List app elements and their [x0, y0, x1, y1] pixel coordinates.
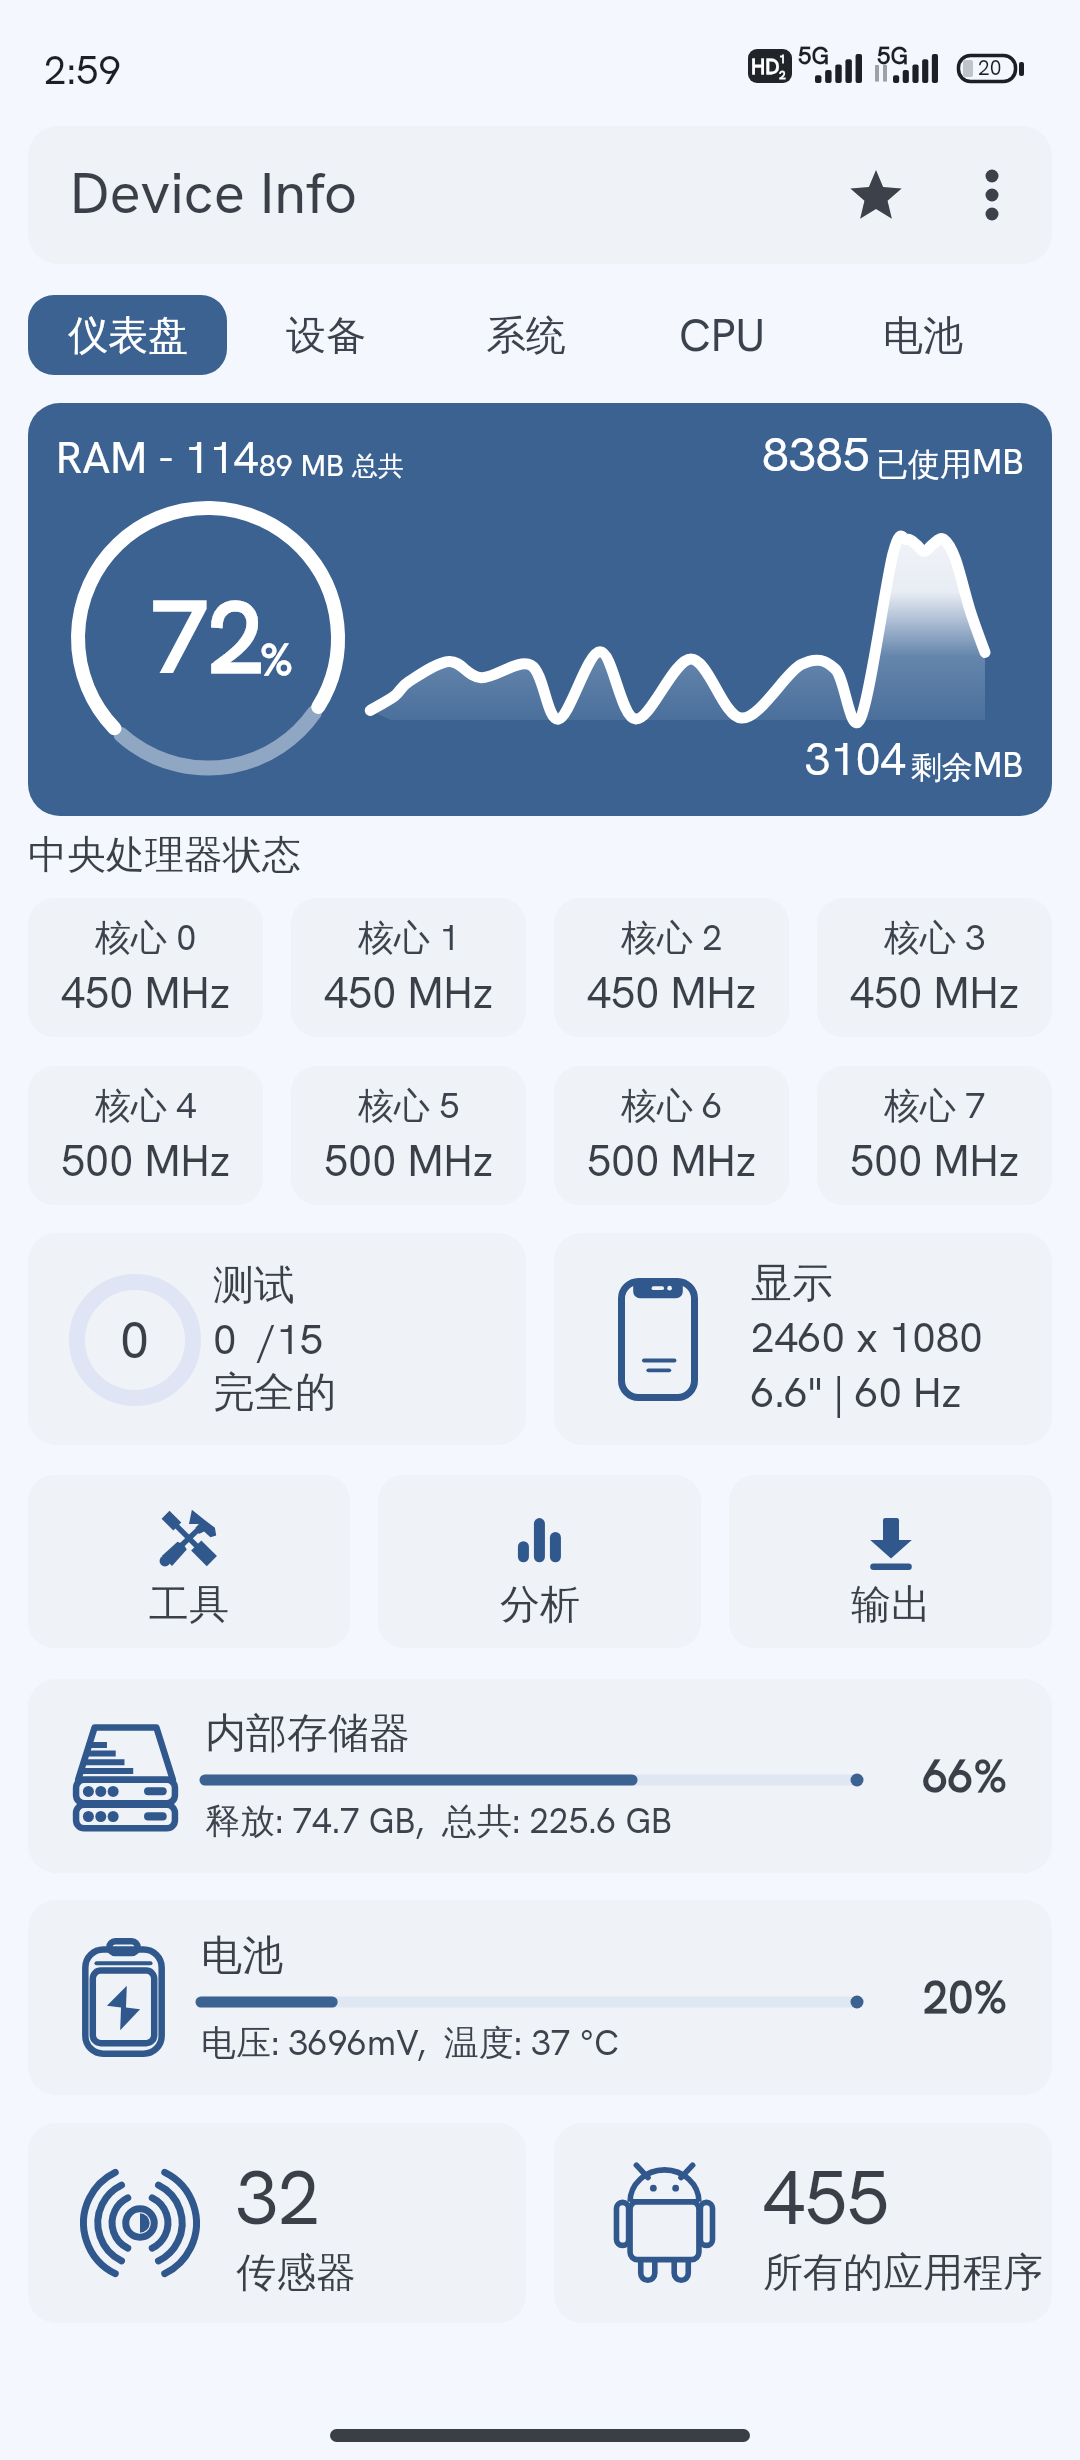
staticText: 中央处理器状态	[28, 830, 301, 879]
staticText: 20%	[923, 1968, 1008, 2027]
button[interactable]: 32	[28, 2123, 526, 2323]
staticText: 分析	[500, 1579, 580, 1629]
staticText: 核心 7	[884, 1082, 986, 1129]
button[interactable]: Favorite	[828, 147, 924, 243]
button[interactable]: 工具	[28, 1475, 350, 1648]
staticText: 电池	[201, 1930, 283, 1982]
staticText: CPU	[679, 306, 766, 365]
staticText: 500 MHz	[324, 1133, 493, 1189]
button[interactable]: 核心 4	[28, 1066, 263, 1205]
button[interactable]: 核心 2	[554, 898, 789, 1037]
staticText: 6.6" | 60 Hz	[751, 1365, 962, 1420]
button[interactable]: 电池	[28, 1900, 1052, 2095]
staticText: 内部存储器	[205, 1708, 410, 1760]
staticText: 500 MHz	[850, 1133, 1019, 1189]
staticText: 5G	[798, 40, 829, 71]
staticText: 工具	[149, 1579, 229, 1629]
staticText: 0 /15	[213, 1312, 323, 1367]
staticText: 核心 6	[621, 1082, 723, 1129]
staticText: 核心 4	[95, 1082, 197, 1129]
staticText: 核心 5	[358, 1082, 460, 1129]
button[interactable]: 核心 0	[28, 898, 263, 1037]
staticText: 电压: 3696mV, 温度: 37 °C	[201, 2020, 619, 2066]
button[interactable]: 455	[554, 2123, 1052, 2323]
staticText: 1	[779, 51, 786, 67]
staticText: 89	[259, 446, 293, 485]
button[interactable]: 核心 5	[291, 1066, 526, 1205]
staticText: 电池	[883, 310, 963, 360]
staticText: 2:59	[44, 44, 121, 96]
staticText: 核心 3	[884, 914, 986, 961]
staticText: 输出	[851, 1579, 931, 1629]
button[interactable]: 仪表盘	[28, 295, 227, 375]
button[interactable]: 系统	[453, 295, 598, 375]
staticText: 已使用	[876, 444, 972, 484]
staticText: 剩余	[911, 748, 973, 787]
button[interactable]: 0	[28, 1233, 526, 1445]
staticText: 500 MHz	[61, 1133, 230, 1189]
staticText: 5G	[877, 40, 908, 71]
staticText: 0	[120, 1306, 150, 1374]
staticText: 测试	[213, 1260, 295, 1312]
button[interactable]: 显示	[554, 1233, 1052, 1445]
button[interactable]: 核心 7	[817, 1066, 1052, 1205]
staticText: 32	[236, 2149, 321, 2247]
staticText: 所有的应用程序	[763, 2247, 1043, 2297]
staticText: 3104	[805, 730, 906, 789]
staticText: 仪表盘	[68, 310, 188, 360]
staticText: 释放: 74.7 GB, 总共: 225.6 GB	[205, 1798, 673, 1844]
staticText: MB	[293, 446, 352, 485]
button[interactable]: More options	[944, 147, 1040, 243]
staticText: 2460 x 1080	[751, 1310, 983, 1365]
staticText: HD	[751, 53, 780, 80]
staticText: RAM - 114	[56, 429, 259, 486]
staticText: 450 MHz	[850, 965, 1019, 1021]
staticText: 500 MHz	[587, 1133, 756, 1189]
staticText: 显示	[751, 1258, 833, 1310]
button[interactable]: 分析	[378, 1475, 701, 1648]
button[interactable]: CPU	[650, 295, 795, 375]
button[interactable]: 核心 3	[817, 898, 1052, 1037]
staticText: 核心 2	[621, 914, 723, 961]
staticText: 2	[779, 67, 786, 83]
staticText: 核心 1	[358, 914, 460, 961]
button[interactable]: 内部存储器	[28, 1679, 1052, 1873]
staticText: Device Info	[70, 155, 358, 231]
staticText: 完全的	[213, 1367, 336, 1419]
staticText: 20	[978, 54, 1002, 81]
staticText: 455	[763, 2149, 890, 2247]
staticText: %	[260, 631, 293, 688]
staticText: 8385	[762, 423, 870, 486]
button[interactable]: 核心 6	[554, 1066, 789, 1205]
staticText: 核心 0	[95, 914, 197, 961]
button[interactable]: 电池	[850, 295, 995, 375]
staticText: 72	[152, 572, 264, 702]
staticText: MB	[973, 742, 1024, 788]
staticText: 系统	[486, 310, 566, 360]
button[interactable]: 核心 1	[291, 898, 526, 1037]
staticText: 总共	[352, 450, 404, 483]
staticText: 66%	[923, 1747, 1008, 1806]
staticText: 450 MHz	[61, 965, 230, 1021]
button[interactable]: 输出	[729, 1475, 1052, 1648]
staticText: 设备	[286, 310, 366, 360]
staticText: 450 MHz	[587, 965, 756, 1021]
staticText: 传感器	[236, 2247, 356, 2297]
button[interactable]: 设备	[253, 295, 398, 375]
staticText: MB	[972, 438, 1024, 485]
staticText: 450 MHz	[324, 965, 493, 1021]
